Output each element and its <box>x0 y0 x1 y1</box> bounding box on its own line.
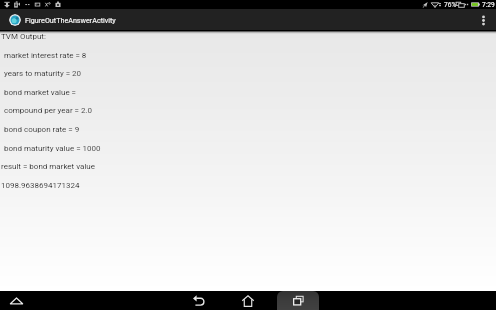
staticText: 1098.9638694171324 <box>1 181 80 190</box>
staticText: result = bond market value <box>1 162 95 171</box>
staticText: market interest rate = 8 <box>4 51 87 60</box>
staticText: bond maturity value = 1000 <box>4 144 101 153</box>
button[interactable]: More options <box>476 9 490 30</box>
staticText: bond market value = <box>4 88 78 97</box>
staticText: FigureOutTheAnswerActivity <box>25 16 116 24</box>
staticText: years to maturity = 20 <box>4 69 82 78</box>
staticText: 7:29 <box>482 1 495 9</box>
staticText: 76% <box>444 1 457 9</box>
staticText: compound per year = 2.0 <box>4 106 93 115</box>
button[interactable]: Recent apps <box>286 291 310 310</box>
button[interactable]: App icon <box>9 14 21 26</box>
button[interactable]: Quick settings <box>7 294 25 308</box>
staticText: bond coupon rate = 9 <box>4 125 80 134</box>
button[interactable]: Home <box>236 291 260 310</box>
button[interactable]: Back <box>187 291 211 310</box>
staticText: TVM Output: <box>1 32 46 41</box>
